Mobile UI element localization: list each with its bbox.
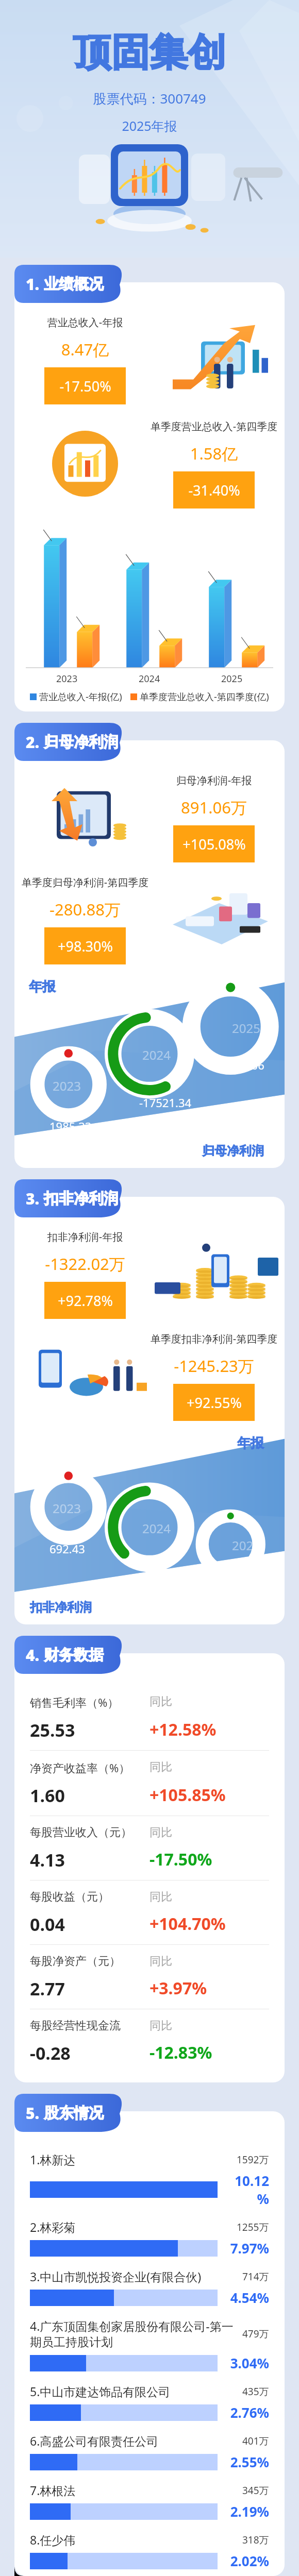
button[interactable]: 单季度扣非净利润-第四季度 — [21, 1331, 278, 1421]
staticText: 4.13 — [30, 1848, 149, 1872]
staticText: 2023 — [53, 1500, 81, 1517]
button[interactable]: 2. — [14, 723, 127, 761]
staticText: 2023 — [56, 672, 78, 685]
staticText: 同比 — [149, 2019, 269, 2033]
staticText: 891.06万 — [149, 796, 278, 818]
staticText: 每股净资产（元） — [30, 1954, 149, 1969]
staticText: 318万 — [242, 2533, 269, 2547]
staticText: 8.47亿 — [21, 338, 149, 360]
button[interactable]: 单季度营业总收入-第四季度 — [21, 418, 278, 509]
staticText: +12.58% — [149, 1718, 269, 1741]
staticText: 2. — [26, 732, 40, 753]
staticText: 2023 — [53, 1077, 81, 1094]
button[interactable]: 净资产收益率（%） — [30, 1751, 269, 1816]
staticText: 435万 — [242, 2385, 269, 2398]
staticText: 股票代码：300749 — [93, 89, 206, 108]
button[interactable]: 7.林根法 — [30, 2474, 269, 2523]
staticText: +3.97% — [149, 1977, 269, 1999]
staticText: 扣非净利润 — [44, 1189, 119, 1208]
button[interactable]: 8.任少伟 — [30, 2523, 269, 2573]
staticText: 单季度营业总收入-第四季度 — [149, 419, 278, 433]
button[interactable]: 归母净利润-年报 — [21, 772, 278, 863]
staticText: 归母净利润 — [44, 733, 119, 752]
staticText: 2024 — [142, 1046, 171, 1063]
button[interactable]: 4. — [14, 1636, 127, 1674]
staticText: 同比 — [149, 1825, 269, 1840]
button[interactable]: 1.林新达 — [14, 2111, 285, 2576]
staticText: -1322.02万 — [21, 1253, 149, 1275]
staticText: 同比 — [149, 1760, 269, 1774]
staticText: 4.54% — [223, 2289, 269, 2307]
staticText: 同比 — [149, 1890, 269, 1904]
button[interactable]: 营业总收入-年报 — [21, 314, 278, 405]
staticText: 同比 — [149, 1694, 269, 1709]
staticText: 2025 — [221, 672, 243, 685]
staticText: 财务数据 — [44, 1646, 104, 1665]
staticText: 单季度扣非净利润-第四季度 — [149, 1332, 278, 1346]
button[interactable]: 3.中山市凯悦投资企业(有限合伙) — [30, 2260, 269, 2310]
staticText: 479万 — [242, 2327, 269, 2341]
button[interactable]: 扣非净利润-年报 — [14, 1197, 285, 1624]
staticText: 2025 — [232, 1537, 260, 1554]
staticText: 单季度归母净利润-第四季度 — [21, 875, 149, 889]
staticText: 1592万 — [237, 2153, 269, 2166]
staticText: 2024 — [142, 1520, 171, 1537]
button[interactable]: 1.林新达 — [30, 2143, 269, 2211]
staticText: 0.04 — [30, 1912, 149, 1936]
staticText: 股东情况 — [44, 2104, 104, 2123]
staticText: 净资产收益率（%） — [30, 1760, 149, 1775]
staticText: 6.高盛公司有限责任公司 — [30, 2433, 238, 2449]
staticText: 401万 — [242, 2434, 269, 2448]
button[interactable]: 销售毛利率（%） — [30, 1685, 269, 1750]
staticText: 归母净利润-年报 — [149, 773, 278, 787]
staticText: 3. — [26, 1188, 40, 1209]
button[interactable]: 5. — [14, 2094, 127, 2132]
staticText: 1.林新达 — [30, 2151, 232, 2167]
staticText: 扣非净利润-年报 — [21, 1230, 149, 1244]
staticText: 销售毛利率（%） — [30, 1694, 149, 1710]
staticText: 每股经营性现金流 — [30, 2019, 149, 2033]
button[interactable]: 5.中山市建达饰品有限公司 — [30, 2375, 269, 2425]
button[interactable]: 单季度归母净利润-第四季度 — [21, 874, 278, 965]
staticText: 5. — [26, 2103, 40, 2124]
button[interactable]: 每股收益（元） — [30, 1880, 269, 1944]
staticText: 2.02% — [223, 2552, 269, 2570]
button[interactable]: 销售毛利率（%） — [14, 1653, 285, 2082]
staticText: 顶固集创 — [73, 29, 226, 77]
staticText: 891.06 — [229, 1057, 264, 1073]
staticText: -17.50% — [59, 377, 111, 396]
staticText: 年报 — [29, 978, 56, 995]
staticText: +98.30% — [58, 937, 113, 956]
staticText: 1.60 — [30, 1784, 149, 1807]
staticText: +104.70% — [149, 1912, 269, 1935]
staticText: 4. — [26, 1645, 40, 1666]
button[interactable]: 3. — [14, 1179, 127, 1217]
staticText: 692.43 — [49, 1541, 85, 1556]
staticText: 345万 — [242, 2484, 269, 2497]
staticText: 2.林彩菊 — [30, 2219, 232, 2235]
button[interactable]: 每股营业收入（元） — [30, 1816, 269, 1880]
button[interactable]: 6.高盛公司有限责任公司 — [30, 2425, 269, 2474]
staticText: -280.88万 — [21, 899, 149, 920]
staticText: 714万 — [242, 2270, 269, 2283]
button[interactable]: 扣非净利润-年报 — [21, 1229, 278, 1319]
button[interactable]: 2.林彩菊 — [30, 2211, 269, 2260]
button[interactable]: 4.广东顶固集创家居股份有限公司-第一期员工持股计划 — [30, 2310, 269, 2375]
staticText: 归母净利润 — [202, 1143, 264, 1159]
staticText: 扣非净利润 — [30, 1600, 92, 1615]
staticText: +105.85% — [149, 1784, 269, 1806]
staticText: 3.中山市凯悦投资企业(有限合伙) — [30, 2268, 238, 2284]
staticText: 2.19% — [223, 2502, 269, 2520]
staticText: -31.40% — [188, 481, 240, 500]
staticText: 4.广东顶固集创家居股份有限公司-第一期员工持股计划 — [30, 2318, 238, 2350]
staticText: 2025 — [232, 1020, 260, 1037]
staticText: 年报 — [237, 1435, 264, 1452]
button[interactable]: 归母净利润-年报 — [14, 740, 285, 1168]
button[interactable]: 每股净资产（元） — [30, 1945, 269, 2009]
button[interactable]: 营业总收入-年报 — [14, 282, 285, 711]
button[interactable]: 每股经营性现金流 — [30, 2009, 269, 2073]
button[interactable]: 1. — [14, 265, 127, 303]
staticText: 每股收益（元） — [30, 1890, 149, 1904]
